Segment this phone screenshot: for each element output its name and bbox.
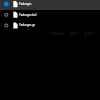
staticText: NEW — [70, 32, 77, 36]
button[interactable] — [0, 0, 100, 10]
staticText: DELETE — [84, 32, 95, 36]
button[interactable] — [0, 10, 100, 21]
button[interactable]: DELETE — [82, 30, 97, 37]
button[interactable]: SHOW ALL — [47, 30, 67, 37]
staticText: Packages.gz — [19, 23, 36, 27]
button[interactable]: NEW — [67, 30, 79, 37]
staticText: Packages.bz2 — [19, 13, 37, 17]
staticText: Packages — [19, 2, 32, 6]
button[interactable] — [0, 20, 100, 31]
staticText: SHOW ALL — [50, 32, 65, 36]
